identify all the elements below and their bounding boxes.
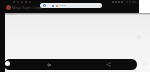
- staticText: Mega Scam Center: [12, 5, 44, 10]
- button[interactable]: Back: [44, 59, 53, 70]
- button[interactable]: [40, 3, 102, 8]
- button[interactable]: Share: [104, 59, 113, 70]
- button[interactable]: Mega Scam Center: [6, 5, 44, 10]
- button[interactable]: Home: [5, 61, 10, 66]
